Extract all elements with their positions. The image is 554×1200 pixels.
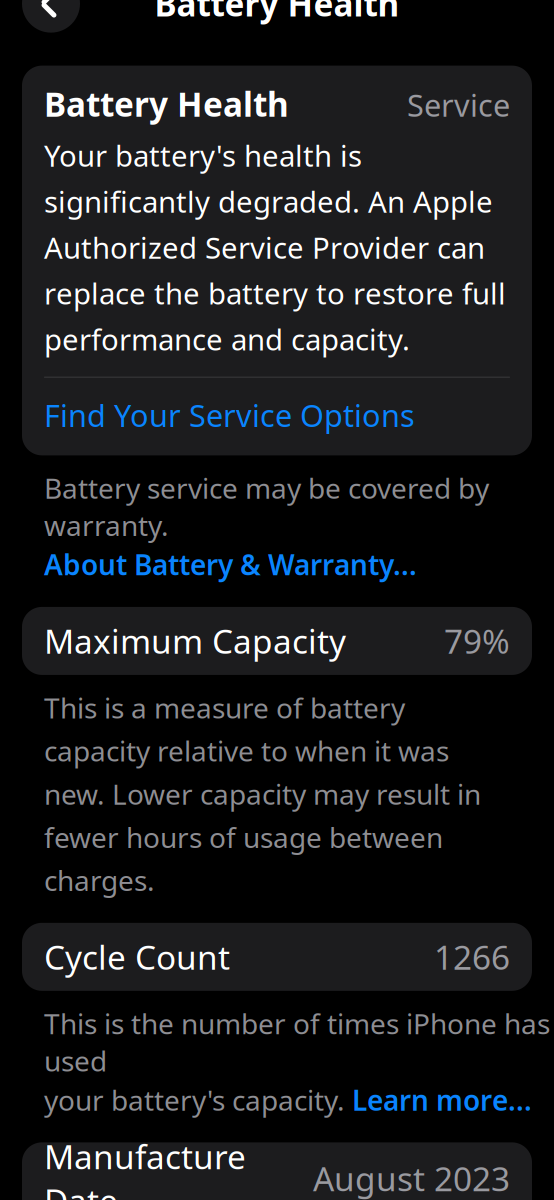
staticText: Battery service may be covered by warran… (44, 469, 489, 544)
button[interactable]: Cycle Count (22, 923, 532, 991)
button[interactable]: Maximum Capacity (22, 607, 532, 675)
button[interactable]: Find Your Service Options (44, 378, 510, 455)
staticText: 1266 (434, 935, 510, 979)
staticText: August 2023 (313, 1156, 510, 1200)
staticText: About Battery & Warranty... (44, 546, 417, 583)
staticText: Maximum Capacity (44, 619, 346, 663)
staticText: This is the number of times iPhone has u… (44, 1005, 550, 1079)
staticText: 79% (444, 619, 510, 663)
staticText: Find Your Service Options (44, 395, 415, 435)
staticText: your battery's capacity. (44, 1081, 352, 1118)
staticText: Service (407, 84, 510, 125)
staticText: Battery Health (154, 0, 399, 26)
staticText: Your battery's health is significantly d… (44, 136, 506, 359)
staticText: This is a measure of battery capacity re… (44, 689, 481, 899)
staticText: Learn more... (352, 1081, 532, 1118)
button[interactable]: About Battery & Warranty... (44, 546, 417, 583)
staticText: Cycle Count (44, 935, 230, 979)
staticText: Manufacture Date (44, 1134, 246, 1200)
button[interactable]: Manufacture Date (22, 1142, 532, 1200)
button[interactable]: Back (22, 0, 80, 33)
staticText: Battery Health (44, 82, 289, 126)
button[interactable]: Learn more... (352, 1081, 532, 1118)
